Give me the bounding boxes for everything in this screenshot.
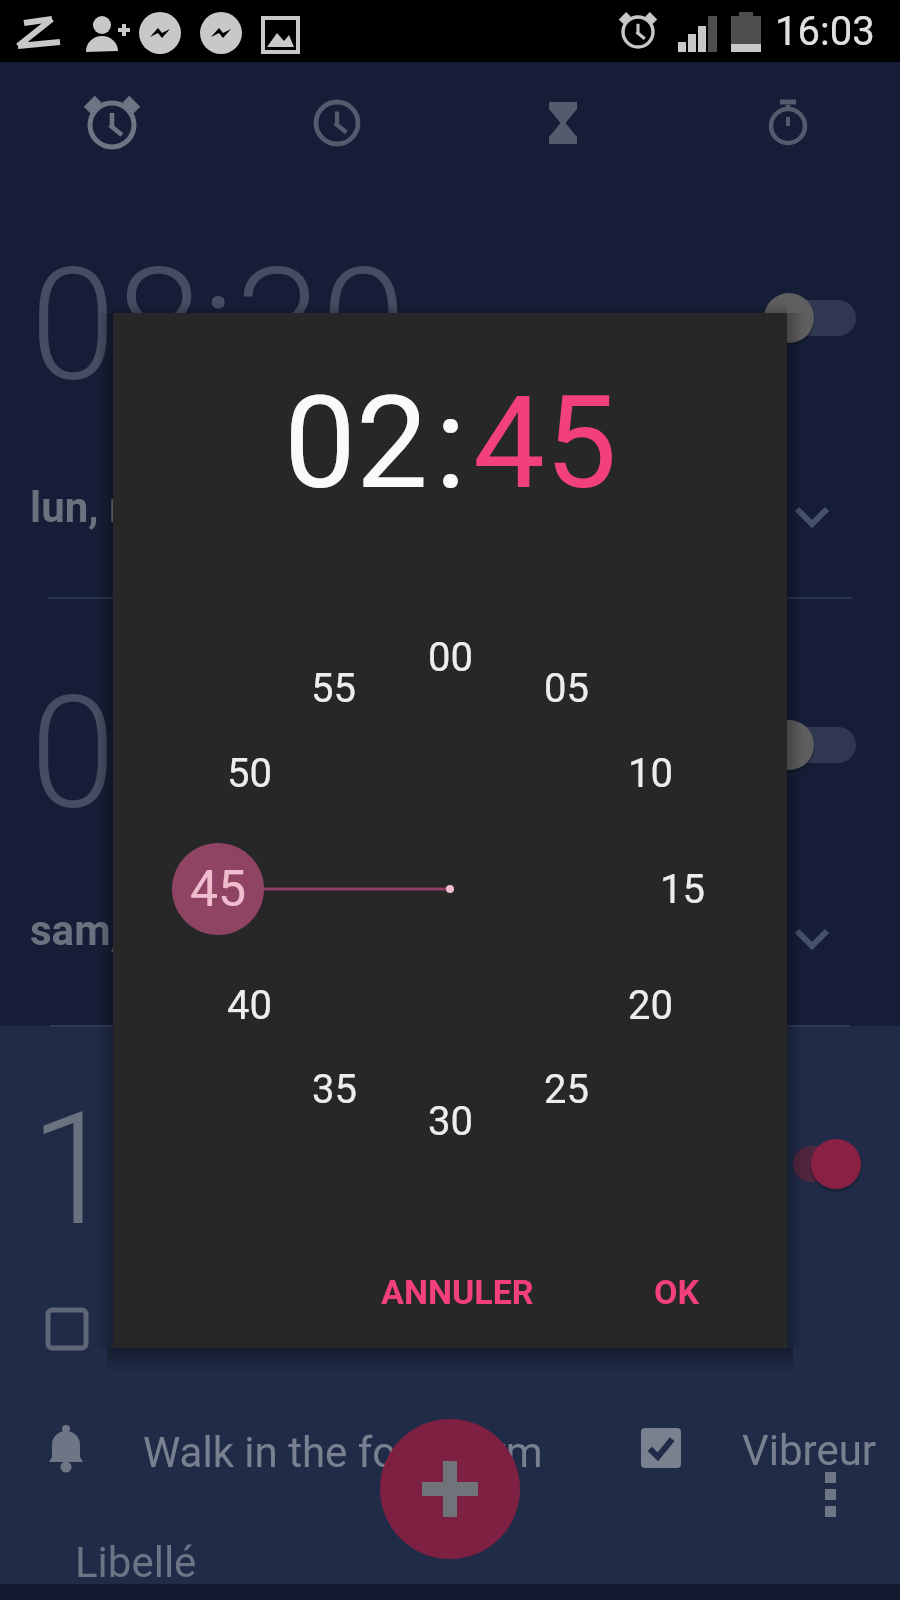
staticText: OK bbox=[654, 1272, 700, 1312]
button[interactable] bbox=[247, 75, 427, 170]
staticText: 15 bbox=[660, 866, 705, 913]
button[interactable] bbox=[629, 1416, 879, 1480]
staticText: 30 bbox=[428, 1098, 473, 1145]
button[interactable]: OK bbox=[597, 1247, 757, 1337]
staticText: 25 bbox=[544, 1066, 589, 1113]
staticText: sam, dim bbox=[30, 906, 203, 955]
staticText: 35 bbox=[312, 1066, 357, 1113]
staticText: 07:00 bbox=[30, 662, 407, 844]
button[interactable] bbox=[782, 908, 842, 968]
button[interactable] bbox=[783, 1136, 883, 1192]
staticText: 45 bbox=[190, 860, 247, 919]
staticText: 10 bbox=[628, 750, 673, 797]
button[interactable] bbox=[380, 1419, 520, 1559]
staticText: 02 bbox=[284, 368, 428, 518]
button[interactable] bbox=[36, 1420, 366, 1484]
staticText: 08:30 bbox=[30, 234, 407, 416]
button[interactable] bbox=[60, 1530, 360, 1594]
button[interactable] bbox=[810, 1460, 854, 1530]
staticText: 20 bbox=[628, 982, 673, 1029]
staticText: Libellé bbox=[75, 1538, 197, 1587]
button[interactable] bbox=[760, 717, 860, 773]
staticText: 40 bbox=[227, 982, 272, 1029]
staticText: Walk in the fort alarm bbox=[143, 1428, 543, 1477]
button[interactable]: ANNULER bbox=[327, 1247, 587, 1337]
staticText: 50 bbox=[227, 750, 272, 797]
staticText: 16:03 bbox=[775, 8, 875, 55]
button[interactable] bbox=[782, 486, 842, 546]
staticText: 55 bbox=[311, 665, 356, 712]
button[interactable] bbox=[697, 75, 877, 170]
staticText: ANNULER bbox=[381, 1272, 534, 1312]
button[interactable] bbox=[472, 75, 652, 170]
staticText: lun, mar, mer. bbox=[30, 483, 284, 532]
staticText: 05 bbox=[544, 665, 589, 712]
staticText: 00 bbox=[428, 634, 473, 681]
staticText: : bbox=[435, 368, 466, 518]
button[interactable] bbox=[36, 1298, 98, 1360]
button[interactable] bbox=[760, 290, 860, 346]
staticText: 45 bbox=[473, 368, 617, 518]
button[interactable] bbox=[22, 75, 202, 170]
staticText: Vibreur bbox=[742, 1426, 877, 1475]
staticText: 10:00 bbox=[30, 1079, 407, 1261]
